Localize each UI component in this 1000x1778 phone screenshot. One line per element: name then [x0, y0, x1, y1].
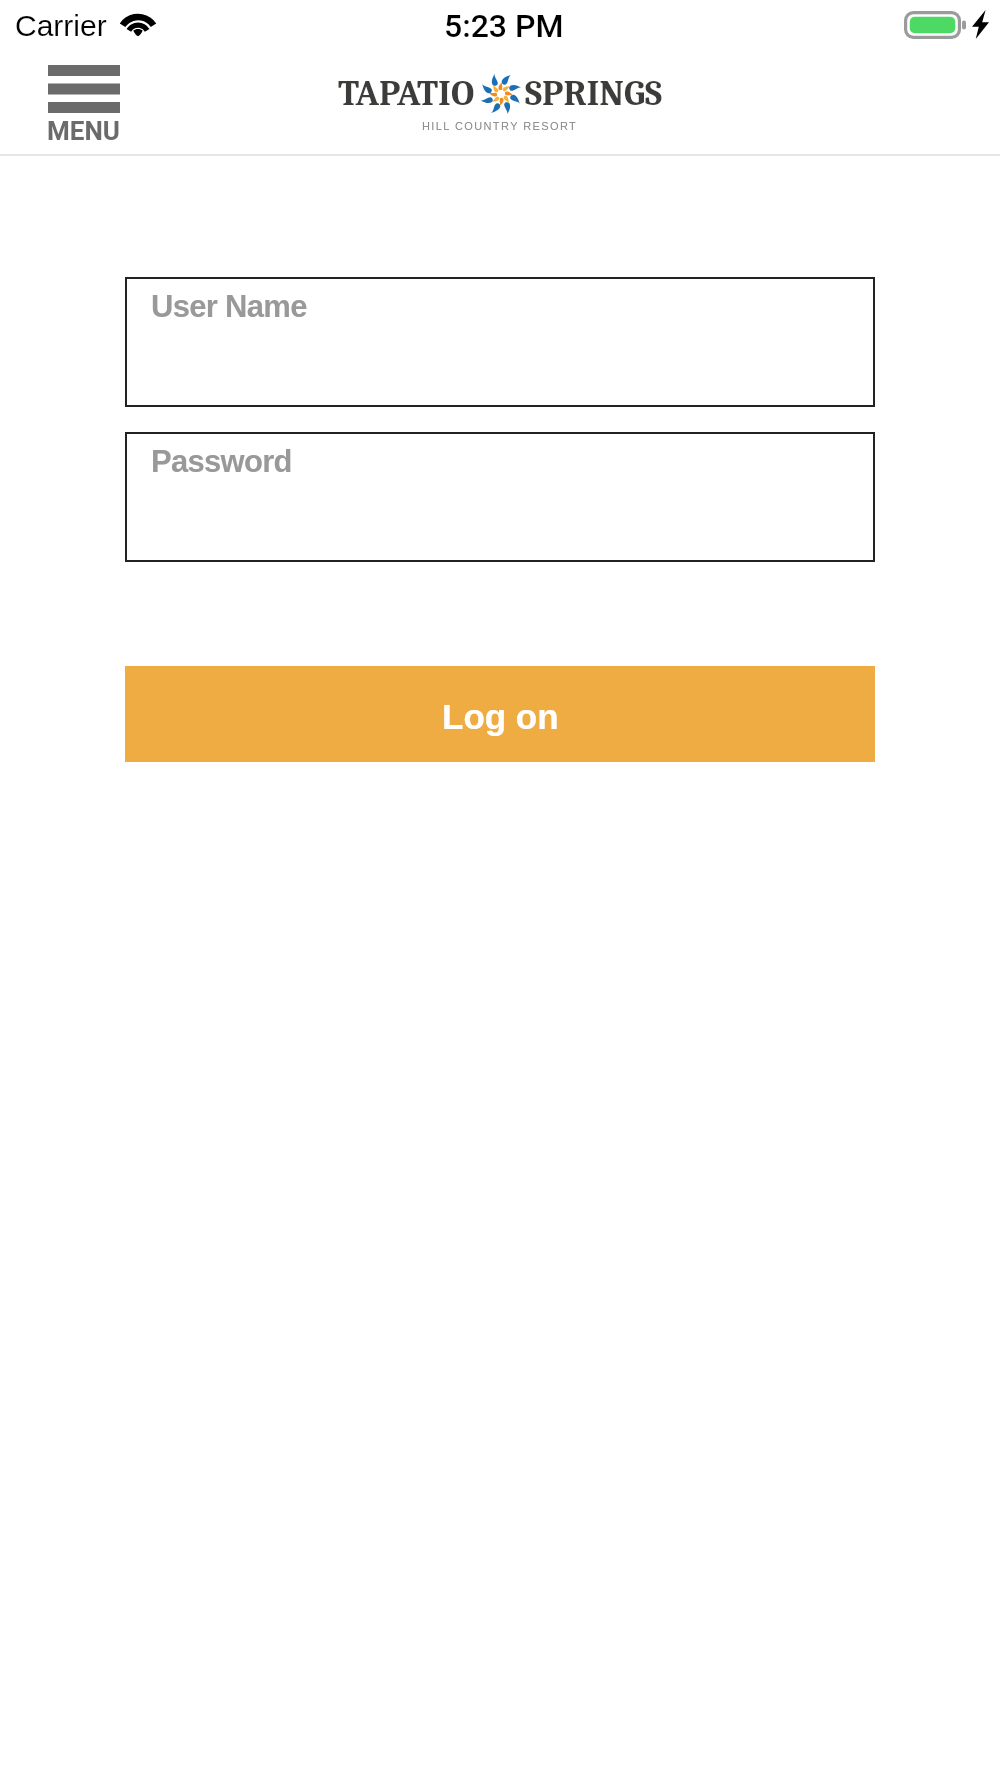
staticText: 5:23 PM [444, 7, 564, 45]
staticText: Password [151, 444, 292, 479]
button[interactable]: Log on [125, 666, 875, 762]
staticText: HILL COUNTRY RESORT [422, 120, 578, 132]
button[interactable]: Password [125, 432, 875, 562]
staticText: User Name [151, 289, 307, 324]
staticText: Log on [442, 697, 559, 736]
staticText: TAPATIO [338, 73, 475, 114]
button[interactable]: User Name [125, 277, 875, 407]
staticText: SPRINGS [525, 73, 663, 114]
button[interactable]: Menu [48, 65, 124, 141]
staticText: MENU [47, 116, 123, 146]
staticText: Carrier [15, 9, 107, 43]
